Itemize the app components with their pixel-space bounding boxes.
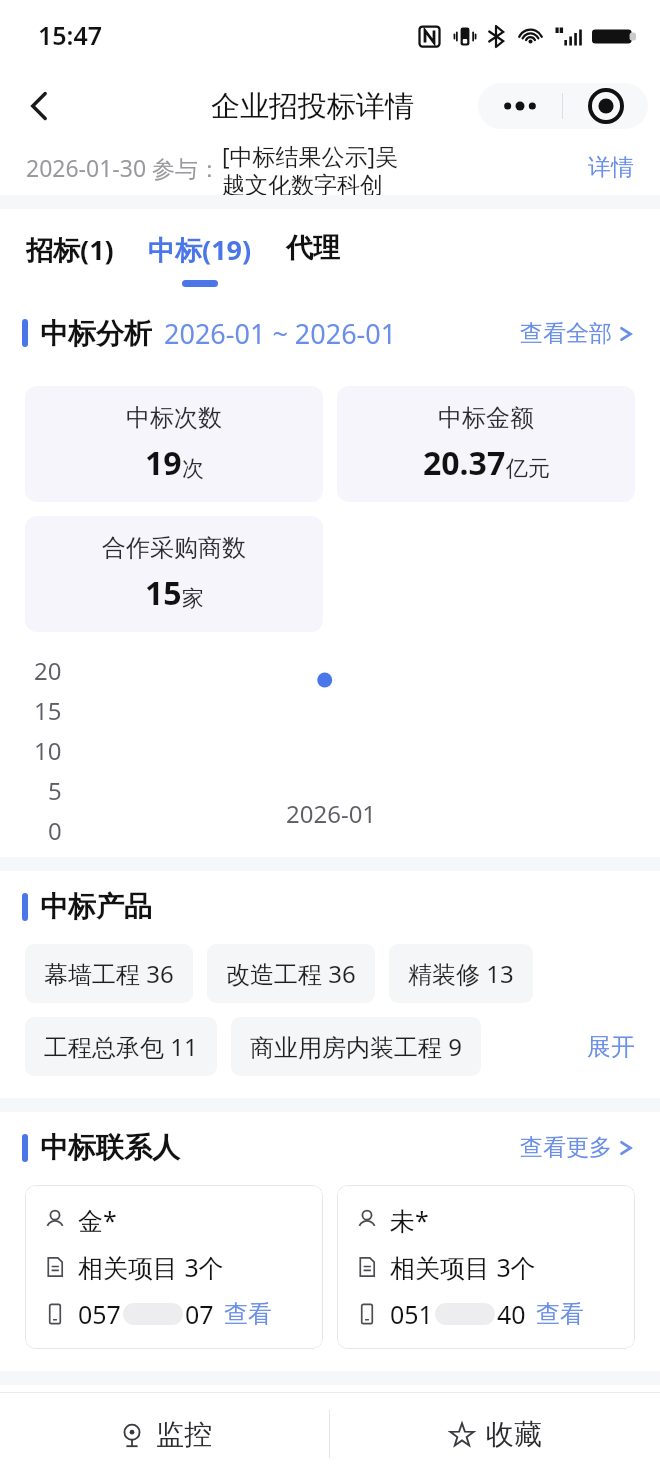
staticText: 15 [145, 571, 182, 615]
staticText: 051 [390, 1297, 433, 1331]
staticText: 幕墙工程 36 [44, 957, 174, 990]
staticText: 工程总承包 11 [44, 1030, 198, 1063]
staticText: 0 [48, 814, 62, 847]
button[interactable]: 中标次数 [25, 386, 323, 502]
staticText: 中标联系人 [40, 1130, 180, 1165]
staticText: 未* [390, 1203, 429, 1237]
button[interactable]: 查看 [536, 1299, 584, 1329]
button[interactable]: 代理 [286, 209, 340, 284]
button[interactable]: 查看全部 [520, 319, 634, 348]
staticText: 合作采购商数 [102, 533, 246, 563]
staticText: 监控 [156, 1417, 212, 1452]
button[interactable]: 金* [25, 1185, 323, 1349]
staticText: 金* [78, 1203, 117, 1237]
button[interactable]: 精装修 13 [389, 944, 533, 1003]
button[interactable]: 商业用房内装工程 9 [231, 1017, 481, 1076]
staticText: 家 [182, 585, 204, 613]
staticText: 代理 [286, 231, 340, 265]
staticText: 057 [78, 1297, 121, 1331]
staticText: 次 [182, 455, 204, 483]
staticText: 19 [145, 441, 182, 485]
button[interactable]: 合作采购商数 [25, 516, 323, 632]
staticText: 查看更多 [520, 1133, 612, 1162]
button[interactable]: Back [14, 80, 66, 132]
staticText: [中标结果公示]吴越文化数字科创谷... [222, 140, 405, 195]
staticText: 商业用房内装工程 9 [250, 1030, 462, 1063]
staticText: 40 [497, 1297, 526, 1331]
button[interactable]: Target [563, 83, 648, 129]
button[interactable]: 工程总承包 11 [25, 1017, 217, 1076]
staticText: 5 [48, 774, 62, 807]
staticText: 中标(19) [148, 231, 252, 268]
staticText: 招标(1) [26, 231, 114, 268]
button[interactable]: 招标(1) [26, 209, 114, 287]
staticText: 改造工程 36 [226, 957, 356, 990]
button[interactable]: More [478, 83, 562, 129]
button[interactable]: 监控 [0, 1393, 329, 1475]
staticText: 查看全部 [520, 319, 612, 348]
staticText: 中标分析 [40, 316, 152, 351]
staticText: 中标金额 [438, 403, 534, 433]
staticText: 查看 [536, 1299, 584, 1329]
staticText: 10 [34, 734, 62, 767]
staticText: 企业招投标详情 [211, 88, 414, 125]
button[interactable]: 收藏 [330, 1393, 660, 1475]
staticText: 2026-01 ~ 2026-01 [164, 315, 397, 352]
button[interactable]: 中标(19) [148, 209, 252, 287]
staticText: 20.37 [423, 441, 506, 485]
staticText: 07 [185, 1297, 214, 1331]
staticText: 中标产品 [40, 889, 152, 924]
staticText: 亿元 [506, 455, 550, 483]
button[interactable]: 改造工程 36 [207, 944, 375, 1003]
staticText: 相关项目 3个 [390, 1250, 536, 1284]
staticText: 相关项目 3个 [78, 1250, 224, 1284]
staticText: 详情 [588, 153, 634, 182]
button[interactable]: 查看更多 [520, 1133, 634, 1162]
button[interactable]: 详情 [588, 153, 634, 182]
staticText: 中标次数 [126, 403, 222, 433]
button[interactable]: 查看 [224, 1299, 272, 1329]
button[interactable]: 幕墙工程 36 [25, 944, 193, 1003]
staticText: 2026-01-30 参与： [26, 152, 222, 183]
staticText: 查看 [224, 1299, 272, 1329]
staticText: 15 [34, 694, 62, 727]
staticText: 2026-01 [286, 797, 377, 830]
staticText: 展开 [587, 1032, 635, 1062]
button[interactable]: 展开 [587, 1032, 635, 1062]
button[interactable]: 未* [337, 1185, 635, 1349]
staticText: 精装修 13 [408, 957, 514, 990]
staticText: 20 [34, 654, 62, 687]
staticText: 15:47 [38, 18, 103, 52]
button[interactable]: 中标金额 [337, 386, 635, 502]
staticText: 收藏 [486, 1417, 542, 1452]
